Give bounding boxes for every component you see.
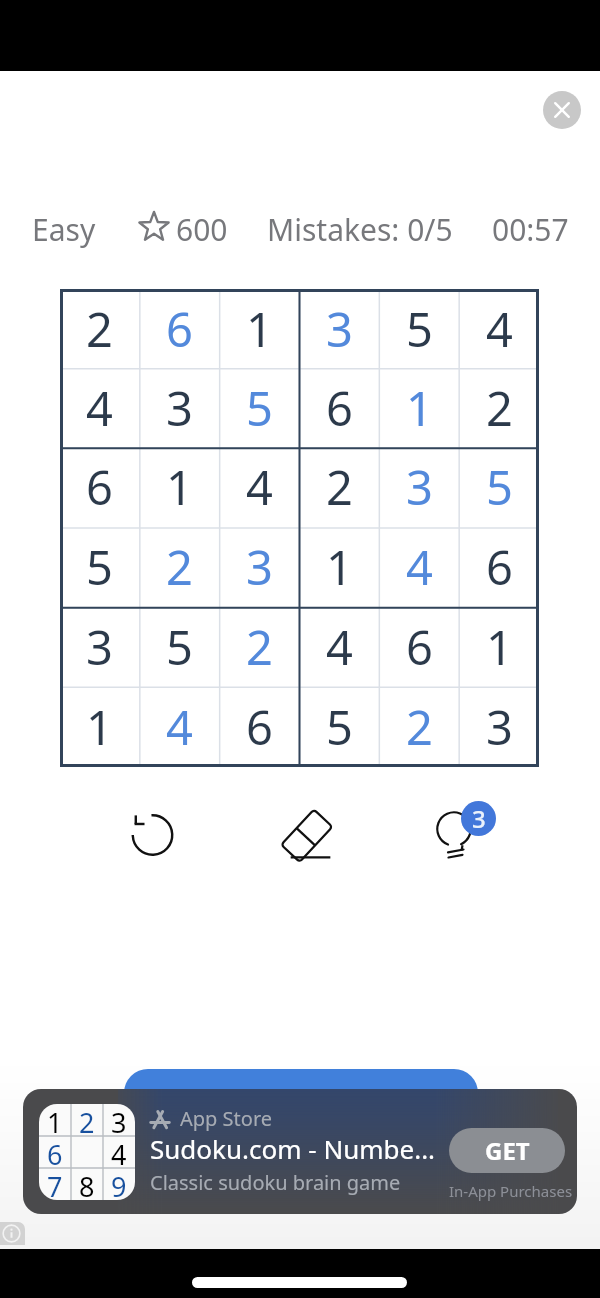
button[interactable]: 4 [139,687,219,767]
staticText: 6 [86,455,113,519]
button[interactable]: Close [543,91,581,129]
button[interactable]: 1 [139,447,219,527]
staticText: 6 [166,297,193,361]
staticText: 6 [326,376,353,440]
button[interactable]: 4 [299,607,379,687]
button[interactable]: 4 [379,527,459,607]
staticText: 6 [246,695,273,759]
staticText: 2 [406,695,433,759]
button[interactable]: 2 [60,289,139,368]
staticText: 5 [406,297,433,361]
button[interactable]: Hint [430,795,502,875]
button[interactable]: 3 [299,289,379,368]
button[interactable]: 3 [379,447,459,527]
button[interactable]: Ad info [0,1222,25,1245]
button[interactable]: 5 [219,368,299,447]
staticText: 3 [326,297,353,361]
staticText: App Store [180,1105,273,1132]
button[interactable]: 1 [23,1089,577,1214]
staticText: 1 [166,455,193,519]
staticText: 2 [486,376,513,440]
button[interactable]: 5 [139,607,219,687]
button[interactable]: 6 [379,607,459,687]
staticText: 600 [176,209,228,250]
button[interactable]: 2 [139,527,219,607]
button[interactable]: 4 [219,447,299,527]
staticText: 1 [406,376,433,440]
staticText: 3 [111,1104,127,1136]
button[interactable] [124,1069,478,1169]
staticText: Mistakes: 0/5 [267,209,453,250]
staticText: Sudoku.com - Numbe... [150,1131,436,1166]
button[interactable]: 4 [459,289,539,368]
staticText: 5 [326,695,353,759]
staticText: 2 [86,297,113,361]
button[interactable]: 5 [60,527,139,607]
staticText: 3 [486,695,513,759]
staticText: 5 [86,535,113,599]
staticText: 4 [86,376,113,440]
staticText: 6 [47,1136,63,1168]
button[interactable]: 2 [219,607,299,687]
staticText: In-App Purchases [449,1181,573,1201]
button[interactable]: 1 [459,607,539,687]
button[interactable]: 1 [379,368,459,447]
button[interactable]: 5 [299,687,379,767]
button[interactable]: 2 [459,368,539,447]
staticText: 1 [486,615,513,679]
button[interactable]: 2 [379,687,459,767]
staticText: 4 [406,535,433,599]
staticText: 9 [111,1168,127,1200]
staticText: 2 [166,535,193,599]
staticText: 3 [406,455,433,519]
button[interactable]: GET [449,1128,565,1173]
button[interactable]: Undo [120,800,190,870]
staticText: 4 [111,1136,127,1168]
button[interactable]: 6 [299,368,379,447]
staticText: 1 [47,1104,63,1136]
button[interactable]: 5 [459,447,539,527]
staticText: 5 [166,615,193,679]
staticText: 4 [166,695,193,759]
button[interactable]: 3 [219,527,299,607]
button[interactable]: 5 [379,289,459,368]
staticText: 7 [47,1168,63,1200]
staticText: GET [485,1134,530,1167]
staticText: 1 [86,695,113,759]
staticText: 1 [246,297,273,361]
staticText: 4 [326,615,353,679]
button[interactable]: 6 [139,289,219,368]
staticText: 3 [246,535,273,599]
staticText: Classic sudoku brain game [150,1169,401,1196]
button[interactable]: 6 [459,527,539,607]
staticText: 2 [246,615,273,679]
staticText: 4 [246,455,273,519]
button[interactable]: 2 [299,447,379,527]
staticText: 8 [79,1168,95,1200]
staticText: 1 [326,535,353,599]
button[interactable]: Erase [268,800,340,872]
staticText: 3 [86,615,113,679]
button[interactable]: 1 [219,289,299,368]
staticText: Easy [32,209,96,250]
staticText: 3 [166,376,193,440]
staticText: 6 [406,615,433,679]
button[interactable]: 1 [299,527,379,607]
staticText: 6 [486,535,513,599]
staticText: 5 [486,455,513,519]
staticText: 00:57 [492,209,569,250]
staticText: 4 [486,297,513,361]
button[interactable]: 4 [60,368,139,447]
staticText: 5 [246,376,273,440]
staticText: 2 [79,1104,95,1136]
staticText: 3 [472,802,486,835]
button[interactable]: 6 [219,687,299,767]
button[interactable]: 6 [60,447,139,527]
button[interactable]: 3 [459,687,539,767]
button[interactable]: 3 [60,607,139,687]
button[interactable]: 3 [139,368,219,447]
staticText: 2 [326,455,353,519]
button[interactable]: 1 [60,687,139,767]
